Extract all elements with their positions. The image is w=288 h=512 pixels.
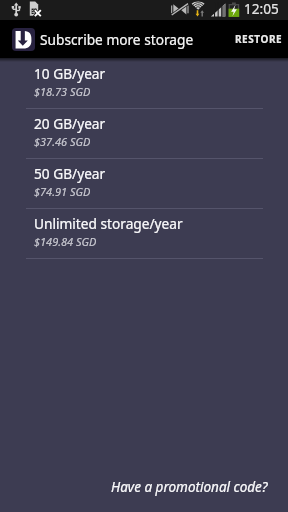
staticText: $37.46 SGD [34, 134, 91, 149]
staticText: $18.73 SGD [34, 84, 91, 99]
staticText: Subscribe more storage [40, 30, 194, 49]
staticText: Unlimited storage/year [34, 214, 183, 233]
other: App logo [12, 28, 35, 51]
button[interactable]: 10 GB/year [0, 59, 288, 108]
button[interactable]: RESTORE [225, 20, 288, 58]
staticText: 50 GB/year [34, 164, 106, 183]
button[interactable]: App logo [0, 20, 200, 58]
staticText: RESTORE [235, 32, 283, 46]
staticText: $74.91 SGD [34, 184, 91, 199]
button[interactable]: Unlimited storage/year [0, 209, 288, 258]
staticText: 20 GB/year [34, 114, 106, 133]
staticText: 10 GB/year [34, 64, 106, 83]
button[interactable]: 50 GB/year [0, 159, 288, 208]
button[interactable]: 20 GB/year [0, 109, 288, 158]
staticText: 12:05 [244, 0, 279, 18]
button[interactable]: Have a promotional code? [111, 478, 288, 512]
staticText: Have a promotional code? [111, 478, 268, 496]
staticText: $149.84 SGD [34, 234, 97, 249]
